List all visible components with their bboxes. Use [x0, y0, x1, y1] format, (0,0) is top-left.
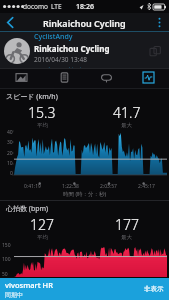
staticText: docomo	[23, 2, 48, 11]
staticText: 10	[7, 160, 13, 167]
staticText: 時間 (時：分：秒)	[63, 190, 107, 198]
staticText: 2:03:57	[100, 183, 117, 190]
button[interactable]: More options	[150, 13, 169, 32]
button[interactable]: Details	[43, 69, 85, 89]
button[interactable]: Back	[0, 13, 19, 32]
button[interactable]: Map	[0, 69, 43, 89]
staticText: 1:22:38	[62, 183, 79, 190]
staticText: 平均	[37, 122, 48, 129]
staticText: コメント	[58, 66, 85, 69]
staticText: 127	[30, 215, 54, 234]
staticText: 50	[2, 271, 8, 278]
staticText: 2:45:17	[138, 183, 155, 190]
staticText: 0:41:19	[24, 183, 41, 190]
staticText: vivosmart HR	[5, 280, 53, 290]
button[interactable]: vivosmart HR	[0, 278, 169, 300]
staticText: 150	[2, 242, 11, 249]
staticText: 15.3	[28, 103, 56, 122]
button[interactable]: Share	[145, 41, 165, 61]
staticText: スピード (km/h)	[6, 92, 58, 102]
staticText: 平均	[37, 234, 48, 241]
staticText: 40	[7, 129, 13, 136]
staticText: 0	[10, 170, 13, 177]
button[interactable]: Charts	[127, 69, 169, 89]
staticText: 41.7	[113, 103, 141, 122]
staticText: 心拍数 (bpm)	[6, 204, 49, 214]
staticText: 177	[115, 215, 139, 234]
staticText: 非表示	[144, 285, 164, 293]
button[interactable]: CyclistAndy	[0, 32, 169, 69]
staticText: 18:26	[76, 2, 94, 12]
staticText: Rinkaichou Cycling	[34, 43, 110, 54]
staticText: Rinkaichou Cycling	[43, 17, 126, 29]
staticText: 100	[2, 256, 11, 263]
staticText: LTE	[51, 2, 62, 11]
staticText: 同期中	[5, 291, 23, 299]
staticText: 最大	[121, 122, 132, 129]
staticText: 30	[7, 139, 13, 146]
staticText: 20	[7, 150, 13, 157]
staticText: 最大	[121, 234, 132, 241]
staticText: CyclistAndy	[34, 32, 73, 42]
staticText: 2016/04/30 13:48	[34, 55, 87, 64]
button[interactable]: Laps	[85, 69, 127, 89]
staticText: いいね	[34, 66, 54, 69]
